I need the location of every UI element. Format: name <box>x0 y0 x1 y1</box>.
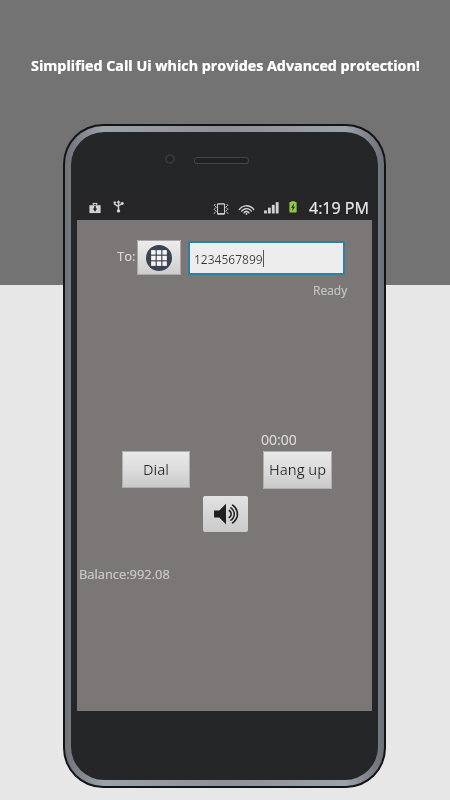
button[interactable]: Speaker <box>203 496 248 532</box>
staticText: Ready <box>313 282 348 298</box>
staticText: Balance:992.08 <box>79 565 170 583</box>
staticText: 1234567899 <box>194 251 263 267</box>
staticText: To: <box>117 247 136 265</box>
staticText: Hang up <box>269 460 327 480</box>
button[interactable]: Dial <box>122 451 190 488</box>
staticText: Simplified Call Ui which provides Advanc… <box>31 56 420 75</box>
staticText: 00:00 <box>261 430 297 449</box>
staticText: Dial <box>143 460 169 480</box>
button[interactable]: Open dial pad <box>137 240 181 275</box>
staticText: 4:19 PM <box>309 197 369 219</box>
button[interactable]: 1234567899 <box>188 241 345 275</box>
button[interactable]: Hang up <box>263 451 332 489</box>
